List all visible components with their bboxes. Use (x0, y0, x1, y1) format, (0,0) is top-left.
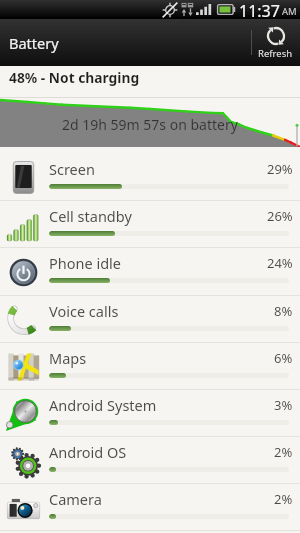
button[interactable]: Refresh (251, 19, 300, 66)
staticText: Phone idle (49, 253, 121, 273)
staticText: 26% (267, 207, 293, 225)
staticText: 2% (274, 490, 293, 508)
staticText: Cell standby (49, 206, 132, 226)
button[interactable]: Android OS (0, 437, 300, 484)
button[interactable]: Android System (0, 390, 300, 437)
staticText: 11:37 (239, 0, 280, 19)
staticText: Refresh (258, 47, 293, 60)
button[interactable]: Cell standby (0, 201, 300, 248)
staticText: 48% - Not charging (9, 68, 140, 87)
staticText: 8% (274, 302, 293, 320)
button[interactable]: Phone idle (0, 248, 300, 296)
staticText: Android OS (49, 442, 127, 462)
staticText: Screen (49, 159, 95, 179)
button[interactable]: Maps (0, 343, 300, 390)
staticText: 29% (267, 160, 293, 178)
button[interactable]: Voice calls (0, 296, 300, 343)
staticText: Maps (49, 348, 87, 368)
button[interactable]: Camera (0, 484, 300, 531)
staticText: Voice calls (49, 301, 119, 321)
button[interactable]: Screen (0, 154, 300, 201)
staticText: 6% (274, 349, 293, 367)
staticText: 2% (274, 443, 293, 461)
staticText: 24% (267, 254, 293, 272)
staticText: AM (282, 5, 297, 18)
staticText: 3% (274, 396, 293, 414)
staticText: Camera (49, 489, 102, 509)
staticText: Android System (49, 395, 157, 415)
staticText: Battery (9, 33, 59, 53)
staticText: 2d 19h 59m 57s on battery (62, 115, 238, 134)
